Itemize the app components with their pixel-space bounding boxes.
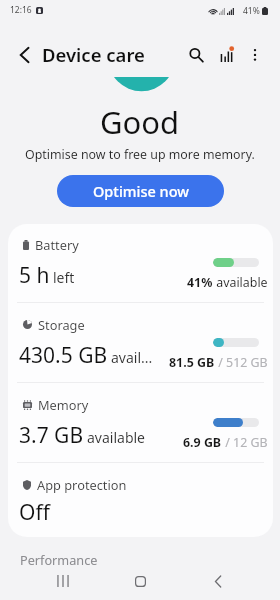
staticText: 430.5 GB (19, 341, 108, 370)
staticText: Optimise now (93, 181, 189, 201)
staticText: available (213, 274, 268, 291)
button[interactable]: Battery (8, 224, 273, 303)
staticText: 5 h (19, 261, 50, 290)
button[interactable]: Recent apps (40, 563, 86, 599)
button[interactable]: Back (195, 563, 241, 599)
staticText: Memory (38, 396, 89, 413)
staticText: / 512 GB (215, 354, 268, 371)
staticText: Device care (42, 42, 145, 67)
staticText: 41% (187, 274, 213, 291)
button[interactable]: Storage (8, 304, 273, 383)
staticText: 81.5 GB (169, 354, 215, 371)
staticText: Optimise now to free up more memory. (25, 146, 255, 163)
staticText: 6.9 GB (183, 434, 222, 451)
button[interactable]: App protection (8, 464, 273, 537)
staticText: 41% (243, 5, 260, 17)
button[interactable]: Memory (8, 384, 273, 463)
staticText: left (53, 268, 75, 287)
button[interactable]: Search (180, 39, 212, 71)
button[interactable]: More options (239, 39, 271, 71)
staticText: Off (19, 498, 50, 527)
button[interactable]: Diagnostics (211, 39, 243, 71)
staticText: / 12 GB (222, 434, 268, 451)
staticText: 3.7 GB (19, 421, 84, 450)
staticText: Storage (38, 316, 85, 333)
staticText: Battery (35, 236, 79, 253)
staticText: Good (100, 101, 180, 143)
staticText: available (87, 428, 146, 447)
button[interactable]: Optimise now (57, 175, 224, 207)
staticText: 12:16 (10, 4, 32, 16)
staticText: avail... (111, 348, 153, 367)
button[interactable]: Home (117, 563, 163, 599)
staticText: App protection (37, 476, 127, 493)
button[interactable]: Back (8, 39, 40, 71)
staticText: Performance (20, 551, 98, 568)
